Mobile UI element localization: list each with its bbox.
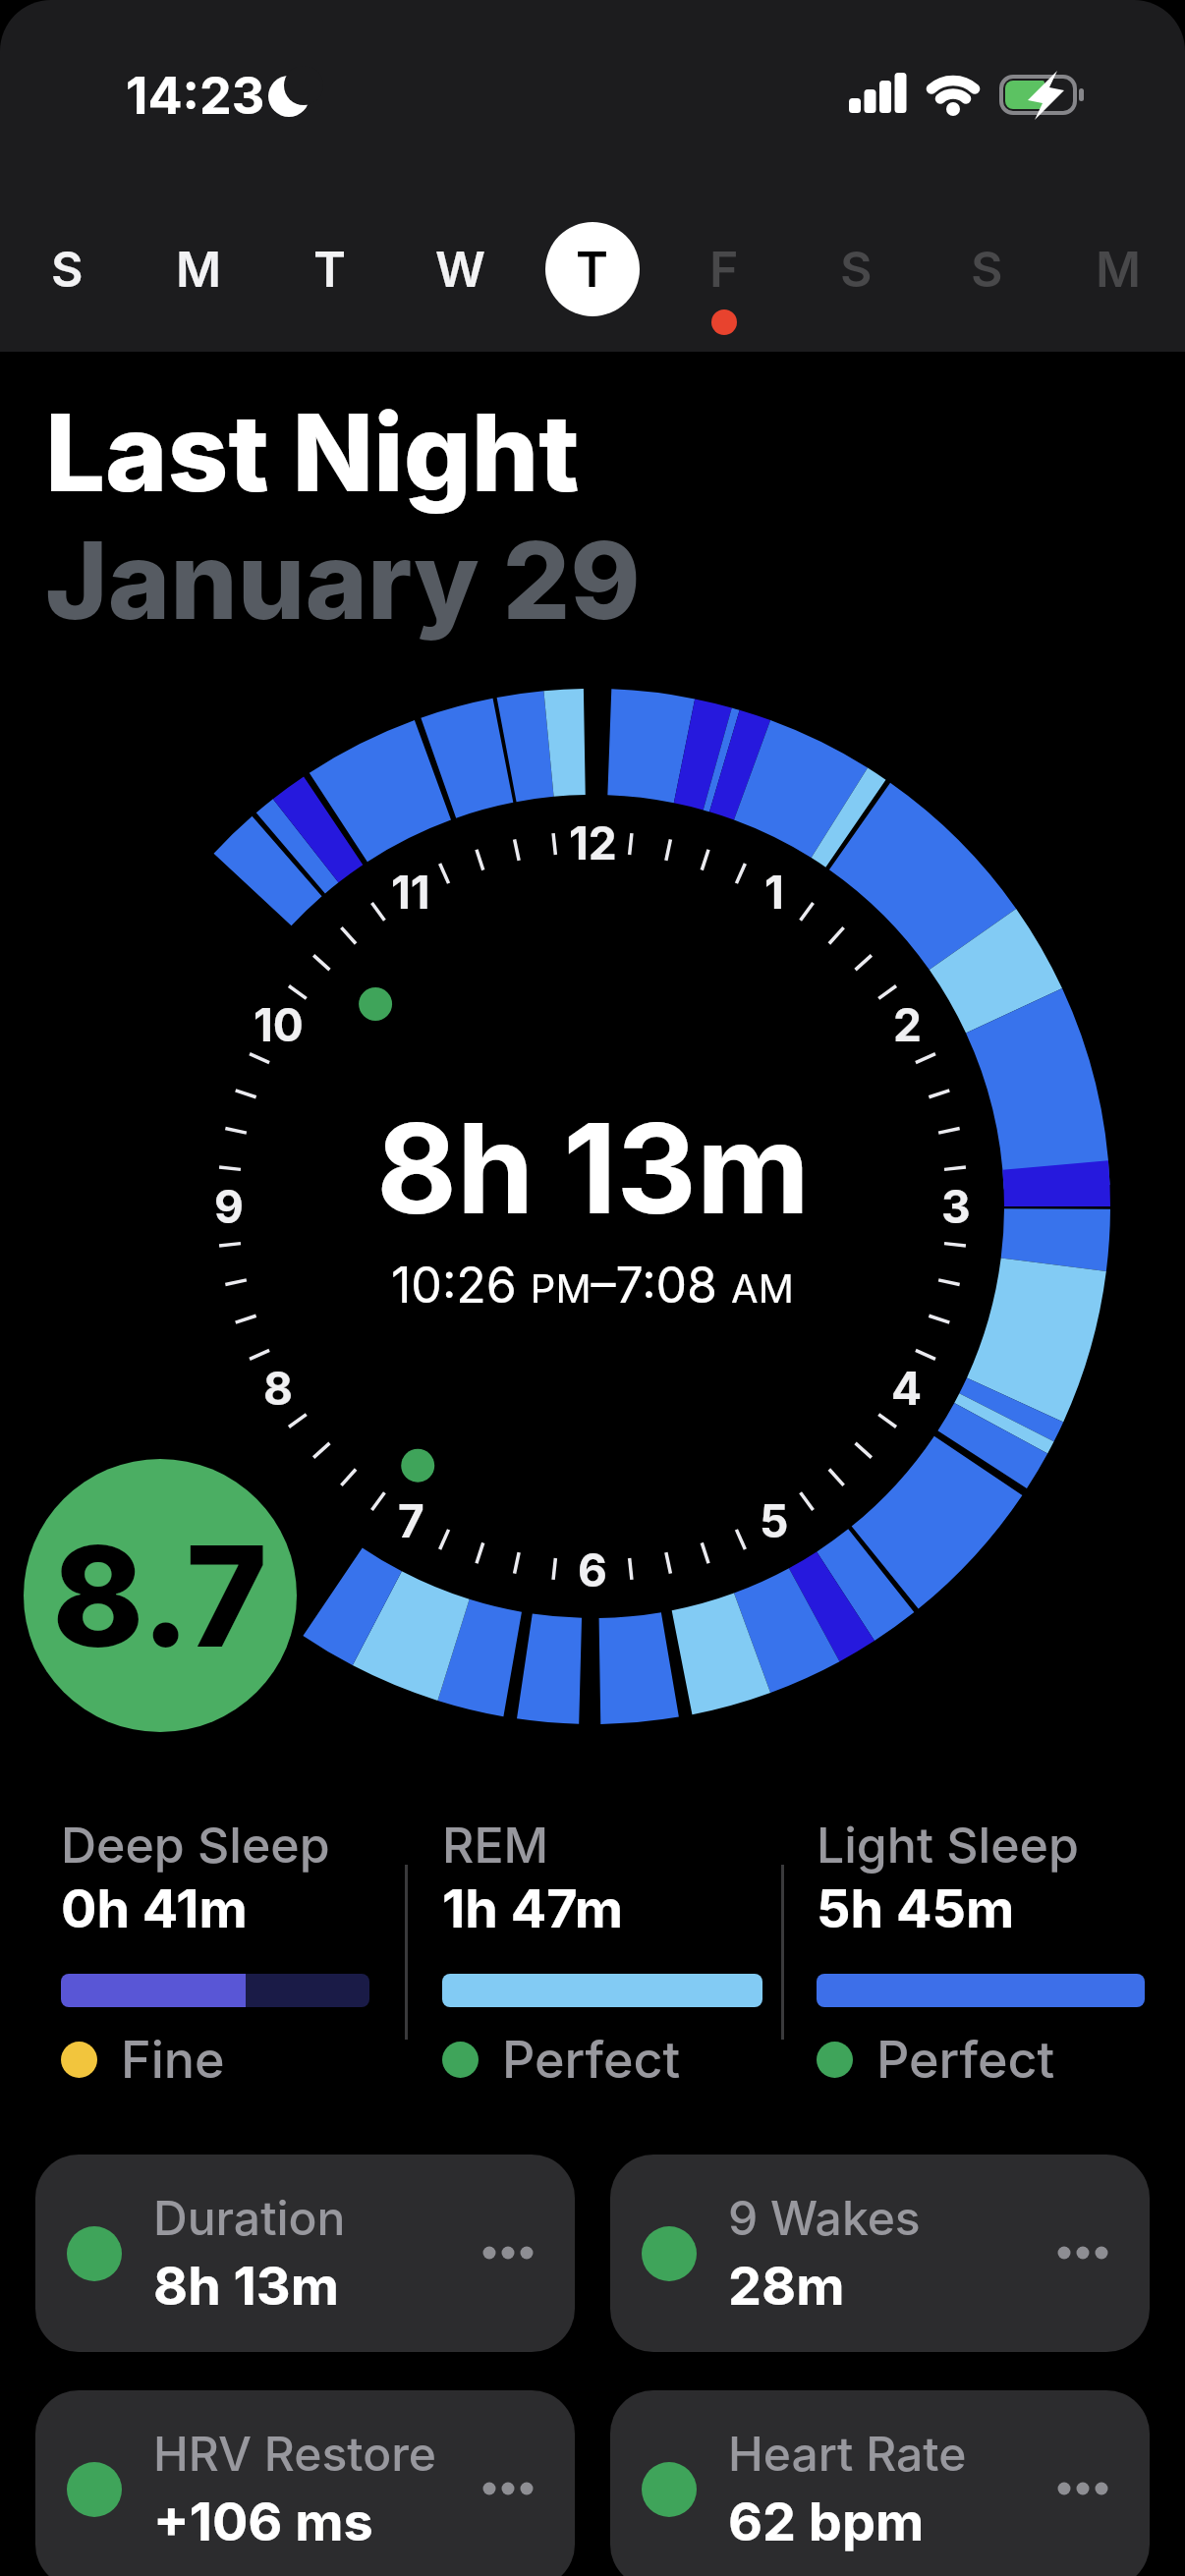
staticText: 10 [254,997,304,1052]
staticText: S [51,240,84,299]
button[interactable]: HRV Restore [35,2390,575,2576]
staticText: Perfect [502,2029,681,2091]
staticText: T [576,240,609,299]
button[interactable]: 9 Wakes [610,2155,1150,2352]
staticText: +106 ms [153,2490,373,2553]
staticText: S [971,240,1003,299]
staticText: HRV Restore [153,2425,437,2482]
staticText: Heart Rate [728,2425,967,2482]
staticText: 4 [891,1361,923,1416]
button[interactable]: Heart Rate [610,2390,1150,2576]
staticText: 3 [941,1179,971,1234]
staticText: Light Sleep [817,1816,1079,1875]
staticText: F [709,240,739,299]
staticText: 11 [391,865,430,920]
staticText: 14:23 [126,65,265,127]
button[interactable]: F [677,222,771,316]
staticText: 1 [764,865,784,920]
staticText: T [313,240,347,299]
staticText: 5 [760,1493,789,1548]
staticText: Fine [121,2029,225,2091]
staticText: S [840,240,873,299]
staticText: W [435,240,486,299]
staticText: 9 Wakes [728,2189,921,2246]
button[interactable]: 8.7 [24,1459,297,1732]
staticText: 28m [728,2254,845,2318]
staticText: Perfect [876,2029,1055,2091]
staticText: 2 [893,997,922,1052]
button[interactable]: T [545,222,640,316]
staticText: Deep Sleep [61,1816,330,1875]
staticText: 10:26 PM–7:08 AM [391,1256,794,1315]
button[interactable]: Duration [35,2155,575,2352]
button[interactable]: W [414,222,508,316]
button[interactable]: T [283,222,377,316]
staticText: REM [442,1816,549,1875]
staticText: Duration [153,2189,346,2246]
staticText: 8.7 [52,1512,268,1680]
staticText: 12 [569,815,617,870]
staticText: M [176,240,222,299]
staticText: 6 [578,1542,607,1597]
button[interactable]: M [151,222,246,316]
staticText: Last Night [45,388,580,517]
staticText: 0h 41m [61,1876,248,1940]
button[interactable]: M [1071,222,1165,316]
button[interactable]: S [809,222,903,316]
staticText: January 29 [45,516,641,644]
staticText: 1h 47m [442,1876,624,1940]
staticText: 8h 13m [376,1093,810,1231]
staticText: 62 bpm [728,2490,925,2553]
staticText: 7 [398,1493,424,1548]
button[interactable]: S [20,222,114,316]
staticText: 9 [214,1179,244,1234]
staticText: 8 [263,1361,293,1416]
staticText: M [1096,240,1142,299]
button[interactable]: S [939,222,1034,316]
staticText: 5h 45m [817,1876,1015,1940]
staticText: 8h 13m [153,2254,339,2318]
